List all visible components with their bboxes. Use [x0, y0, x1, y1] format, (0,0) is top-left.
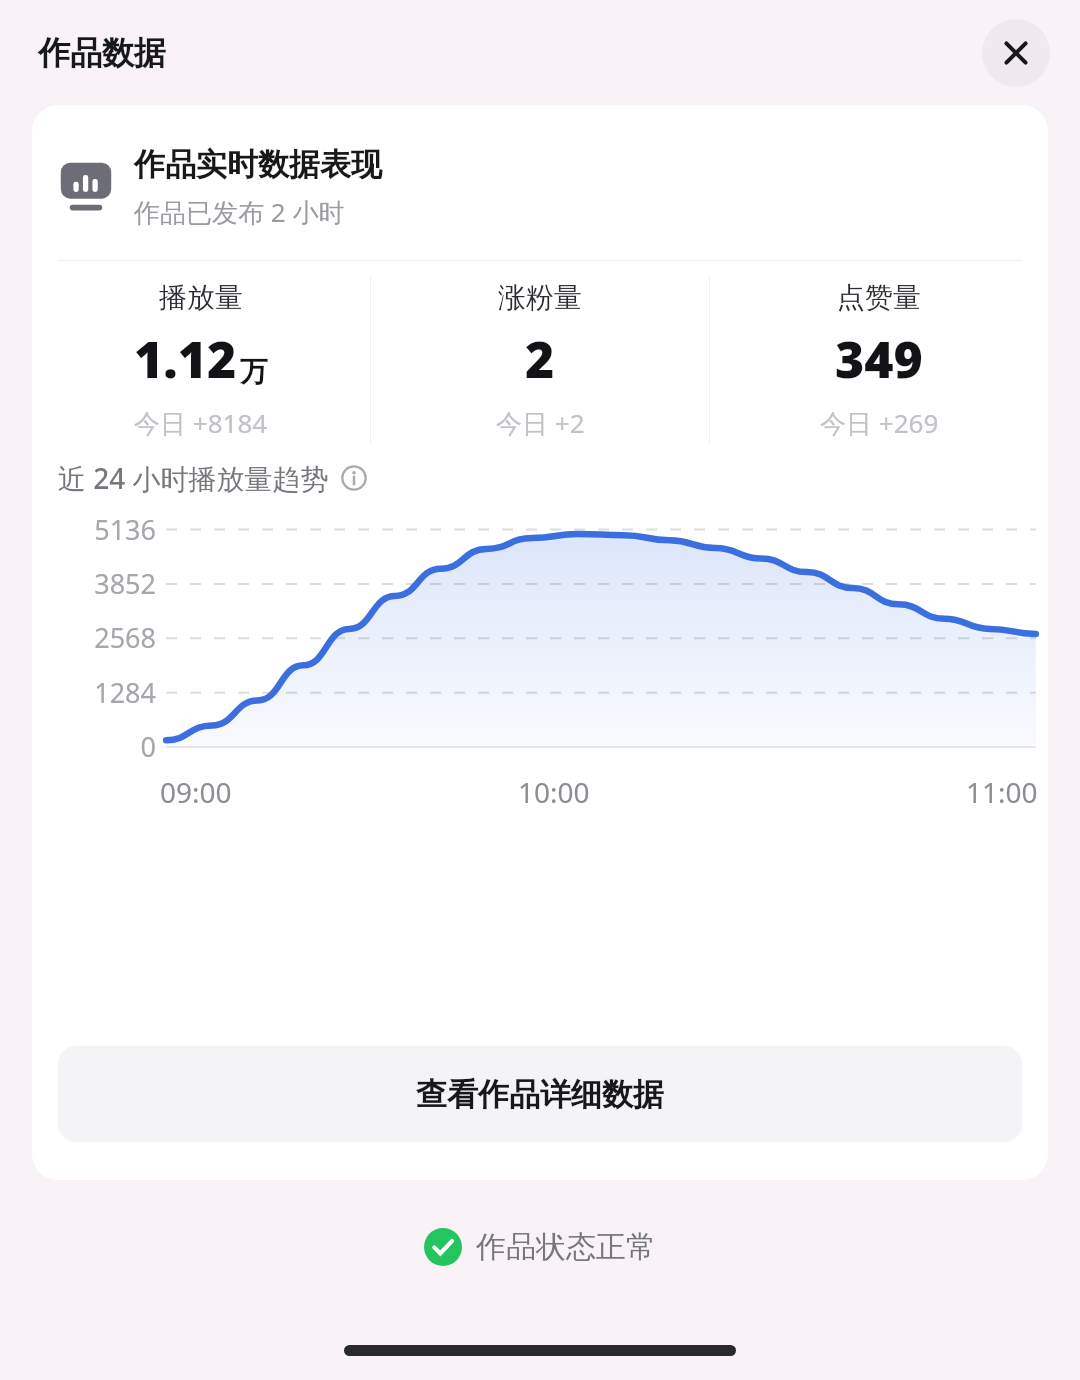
staticText: 播放量 [159, 280, 243, 315]
staticText: 2 [525, 325, 555, 393]
button[interactable]: 播放量 [32, 280, 370, 441]
staticText: 今日 +269 [820, 405, 939, 441]
button[interactable]: Close [982, 19, 1050, 87]
button[interactable]: 点赞量 [710, 280, 1048, 441]
staticText: 作品已发布 2 小时 [134, 194, 345, 230]
staticText: 1.12 [134, 325, 237, 393]
staticText: 今日 +2 [496, 405, 585, 441]
staticText: 查看作品详细数据 [416, 1075, 664, 1114]
staticText: 万 [240, 354, 268, 389]
staticText: 近 24 小时播放量趋势 [58, 459, 329, 497]
staticText: 作品状态正常 [476, 1228, 656, 1266]
staticText: 作品实时数据表现 [134, 145, 382, 184]
staticText: 点赞量 [837, 280, 921, 315]
staticText: 10:00 [518, 773, 590, 811]
staticText: 作品数据 [38, 33, 166, 73]
button[interactable]: 涨粉量 [371, 280, 709, 441]
staticText: 今日 +8184 [134, 405, 268, 441]
staticText: 09:00 [160, 773, 232, 811]
button[interactable]: 查看作品详细数据 [58, 1046, 1022, 1142]
staticText: 11:00 [966, 773, 1038, 811]
staticText: 5136 [32, 511, 156, 548]
button[interactable]: Info [339, 463, 369, 493]
staticText: 0 [32, 728, 156, 765]
staticText: 349 [835, 325, 923, 393]
staticText: 涨粉量 [498, 280, 582, 315]
staticText: 1284 [32, 674, 156, 711]
staticText: 3852 [32, 565, 156, 602]
staticText: 2568 [32, 619, 156, 656]
